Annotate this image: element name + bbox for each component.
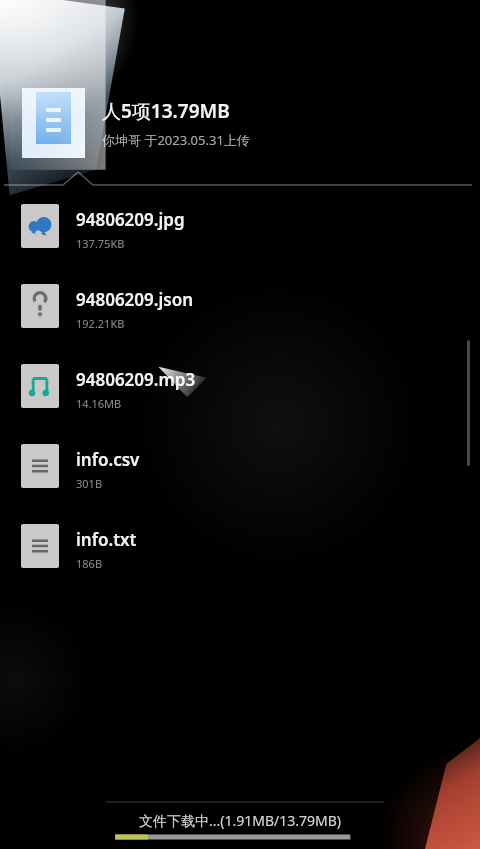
button[interactable]: info.csv [0, 426, 480, 506]
button[interactable]: 94806209.jpg [0, 186, 480, 266]
staticText: 186B [76, 556, 103, 571]
staticText: info.csv [76, 448, 140, 471]
staticText: 137.75KB [76, 236, 125, 251]
staticText: 94806209.json [76, 288, 194, 311]
staticText: info.txt [76, 528, 137, 551]
button[interactable]: 人5项13.79MB [0, 0, 480, 186]
staticText: 94806209.mp3 [76, 368, 196, 391]
staticText: 94806209.jpg [76, 208, 185, 231]
button[interactable]: 94806209.json [0, 266, 480, 346]
staticText: 192.21KB [76, 316, 125, 331]
staticText: 301B [76, 476, 103, 491]
staticText: 文件下载中...(1.91MB/13.79MB) [139, 811, 342, 830]
button[interactable]: 94806209.mp3 [0, 346, 480, 426]
staticText: 人5项13.79MB [102, 98, 230, 124]
staticText: 14.16MB [76, 396, 122, 411]
staticText: 你坤哥 于2023.05.31上传 [102, 131, 250, 149]
button[interactable]: info.txt [0, 506, 480, 586]
button[interactable]: 文件下载中...(1.91MB/13.79MB) [0, 797, 480, 849]
